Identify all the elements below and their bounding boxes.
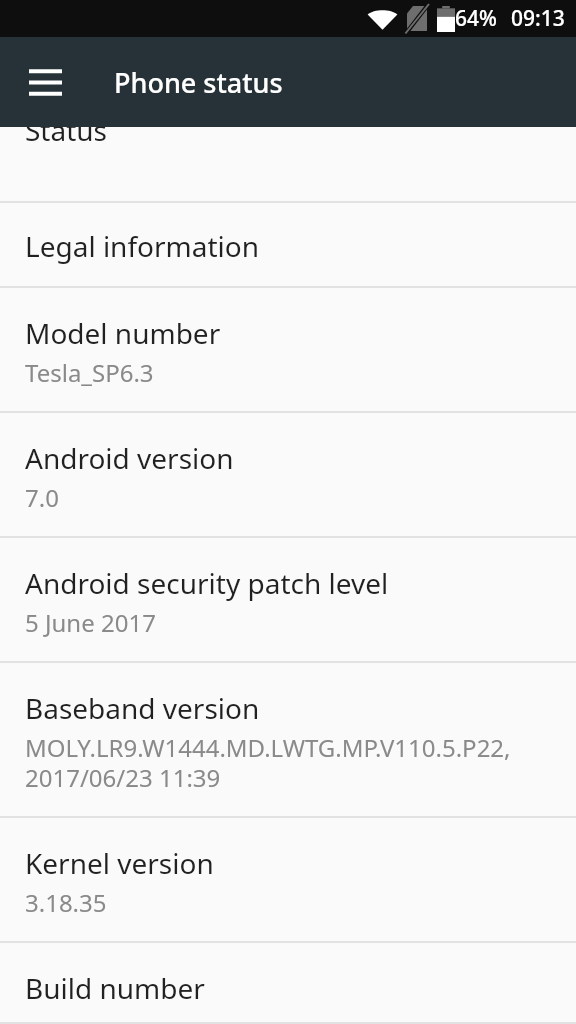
- button[interactable]: Kernel version: [0, 818, 576, 943]
- button[interactable]: Legal information: [0, 203, 576, 288]
- staticText: Status: [25, 127, 108, 149]
- staticText: Tesla_SP6.3: [25, 356, 154, 389]
- staticText: MOLY.LR9.W1444.MD.LWTG.MP.V110.5.P22, 20…: [25, 731, 511, 794]
- staticText: 5 June 2017: [25, 606, 156, 639]
- button[interactable]: Baseband version: [0, 663, 576, 818]
- staticText: Kernel version: [25, 844, 214, 882]
- button[interactable]: Android version: [0, 413, 576, 538]
- button[interactable]: Model number: [0, 288, 576, 413]
- staticText: 3.18.35: [25, 886, 107, 919]
- button[interactable]: Status: [0, 127, 576, 203]
- button[interactable]: Open navigation menu: [14, 51, 76, 113]
- button[interactable]: Android security patch level: [0, 538, 576, 663]
- staticText: Legal information: [25, 227, 260, 265]
- staticText: Baseband version: [25, 689, 260, 727]
- staticText: Phone status: [114, 64, 283, 101]
- staticText: 64%: [455, 4, 497, 33]
- staticText: 7.0: [25, 481, 59, 514]
- staticText: Model number: [25, 314, 221, 352]
- staticText: Android security patch level: [25, 564, 389, 602]
- staticText: 09:13: [511, 4, 565, 33]
- staticText: Build number: [25, 969, 205, 1000]
- staticText: Android version: [25, 439, 234, 477]
- button[interactable]: Build number: [0, 943, 576, 1024]
